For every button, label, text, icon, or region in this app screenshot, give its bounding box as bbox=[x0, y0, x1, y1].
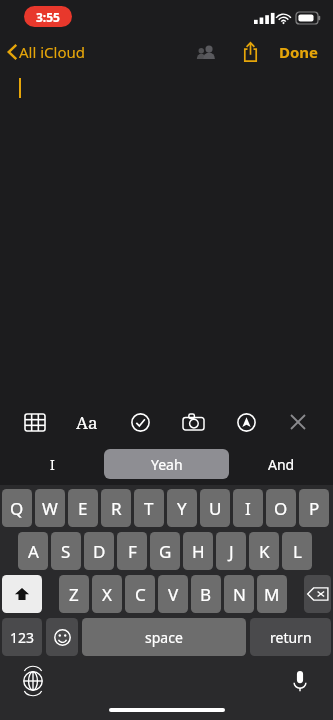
button[interactable]: F bbox=[117, 532, 147, 570]
button[interactable]: M bbox=[257, 575, 287, 613]
staticText: R bbox=[111, 497, 122, 520]
staticText: A bbox=[28, 540, 39, 563]
staticText: H bbox=[192, 540, 205, 563]
staticText: Z bbox=[69, 583, 79, 606]
button[interactable]: S bbox=[51, 532, 81, 570]
button[interactable]: L bbox=[282, 532, 312, 570]
staticText: P bbox=[309, 497, 320, 520]
staticText: 3:55 bbox=[36, 9, 60, 25]
staticText: L bbox=[293, 540, 302, 563]
staticText: C bbox=[135, 583, 146, 606]
button[interactable]: X bbox=[92, 575, 122, 613]
staticText: Aa bbox=[76, 411, 98, 434]
staticText: All iCloud bbox=[19, 42, 86, 62]
staticText: E bbox=[78, 497, 88, 520]
button[interactable]: H bbox=[183, 532, 213, 570]
staticText: Y bbox=[177, 497, 187, 520]
button[interactable]: Shift bbox=[2, 575, 42, 613]
button[interactable]: Y bbox=[167, 489, 197, 527]
button[interactable]: space bbox=[82, 618, 246, 656]
staticText: N bbox=[233, 583, 246, 606]
button[interactable]: Format text bbox=[69, 404, 105, 440]
button[interactable]: R bbox=[101, 489, 131, 527]
button[interactable]: V bbox=[158, 575, 188, 613]
button[interactable]: 123 bbox=[2, 618, 42, 656]
button[interactable]: J bbox=[216, 532, 246, 570]
button[interactable]: Z bbox=[59, 575, 89, 613]
button[interactable]: G bbox=[150, 532, 180, 570]
button[interactable]: Share bbox=[235, 37, 265, 67]
staticText: Yeah bbox=[151, 455, 183, 474]
button[interactable]: Add people bbox=[191, 37, 221, 67]
button[interactable]: K bbox=[249, 532, 279, 570]
staticText: T bbox=[144, 497, 154, 520]
staticText: D bbox=[93, 540, 106, 563]
button[interactable]: Emoji bbox=[46, 618, 78, 656]
button[interactable]: N bbox=[224, 575, 254, 613]
button[interactable]: T bbox=[134, 489, 164, 527]
button[interactable]: I bbox=[233, 489, 263, 527]
button[interactable]: Done bbox=[275, 36, 323, 68]
staticText: S bbox=[61, 540, 71, 563]
staticText: space bbox=[145, 628, 183, 647]
staticText: I bbox=[50, 455, 55, 474]
staticText: J bbox=[229, 540, 234, 563]
staticText: Done bbox=[279, 42, 319, 62]
button[interactable]: Table bbox=[17, 404, 53, 440]
button[interactable]: U bbox=[200, 489, 230, 527]
staticText: F bbox=[128, 540, 137, 563]
button[interactable]: And bbox=[229, 449, 333, 479]
button[interactable]: E bbox=[68, 489, 98, 527]
button[interactable]: Close keyboard bbox=[280, 404, 316, 440]
button[interactable]: Camera bbox=[175, 404, 211, 440]
staticText: And bbox=[268, 455, 295, 474]
staticText: M bbox=[264, 583, 280, 606]
staticText: W bbox=[42, 497, 58, 520]
button[interactable]: Q bbox=[2, 489, 32, 527]
button[interactable]: All iCloud bbox=[0, 38, 92, 66]
staticText: U bbox=[209, 497, 222, 520]
staticText: K bbox=[259, 540, 270, 563]
button[interactable]: O bbox=[266, 489, 296, 527]
button[interactable]: B bbox=[191, 575, 221, 613]
button[interactable]: W bbox=[35, 489, 65, 527]
button[interactable]: Change keyboard bbox=[18, 666, 48, 696]
button[interactable]: return bbox=[250, 618, 331, 656]
button[interactable]: Markup bbox=[228, 404, 264, 440]
staticText: B bbox=[200, 583, 212, 606]
button[interactable]: I bbox=[0, 449, 104, 479]
staticText: V bbox=[168, 583, 179, 606]
staticText: I bbox=[245, 497, 251, 520]
button[interactable]: P bbox=[299, 489, 329, 527]
staticText: O bbox=[274, 497, 288, 520]
staticText: 123 bbox=[10, 628, 35, 647]
button[interactable]: C bbox=[125, 575, 155, 613]
staticText: X bbox=[102, 583, 112, 606]
button[interactable]: Checklist bbox=[122, 404, 158, 440]
button[interactable]: A bbox=[18, 532, 48, 570]
button[interactable]: Yeah bbox=[104, 449, 229, 479]
staticText: G bbox=[159, 540, 172, 563]
button[interactable]: Dictation bbox=[285, 666, 315, 696]
button[interactable]: Backspace bbox=[304, 575, 331, 613]
staticText: return bbox=[270, 628, 312, 647]
button[interactable]: D bbox=[84, 532, 114, 570]
staticText: Q bbox=[10, 497, 24, 520]
